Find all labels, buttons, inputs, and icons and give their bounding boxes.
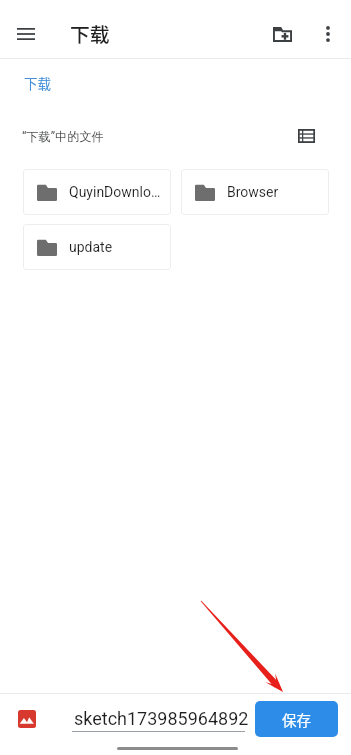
staticText: 保存 (282, 709, 311, 730)
button[interactable]: QuyinDownlo… (23, 169, 171, 215)
button[interactable]: update (23, 224, 171, 270)
button[interactable]: More options (310, 16, 346, 52)
other: Home gesture bar (117, 747, 238, 750)
button[interactable]: 下载 (16, 68, 59, 98)
staticText: update (69, 239, 113, 255)
staticText: 下载 (24, 73, 51, 93)
button[interactable]: 保存 (255, 701, 338, 737)
staticText: sketch173985964892 (74, 708, 249, 729)
staticText: Browser (227, 184, 279, 200)
button[interactable]: Switch to list view (289, 119, 323, 153)
button[interactable]: Browser (181, 169, 329, 215)
staticText: QuyinDownlo… (69, 184, 161, 200)
button[interactable]: New folder (264, 16, 300, 52)
button[interactable]: Image file (10, 702, 43, 735)
staticText: 下载 (70, 19, 110, 48)
button[interactable]: Menu (8, 16, 44, 52)
staticText: “下载”中的文件 (22, 129, 104, 144)
